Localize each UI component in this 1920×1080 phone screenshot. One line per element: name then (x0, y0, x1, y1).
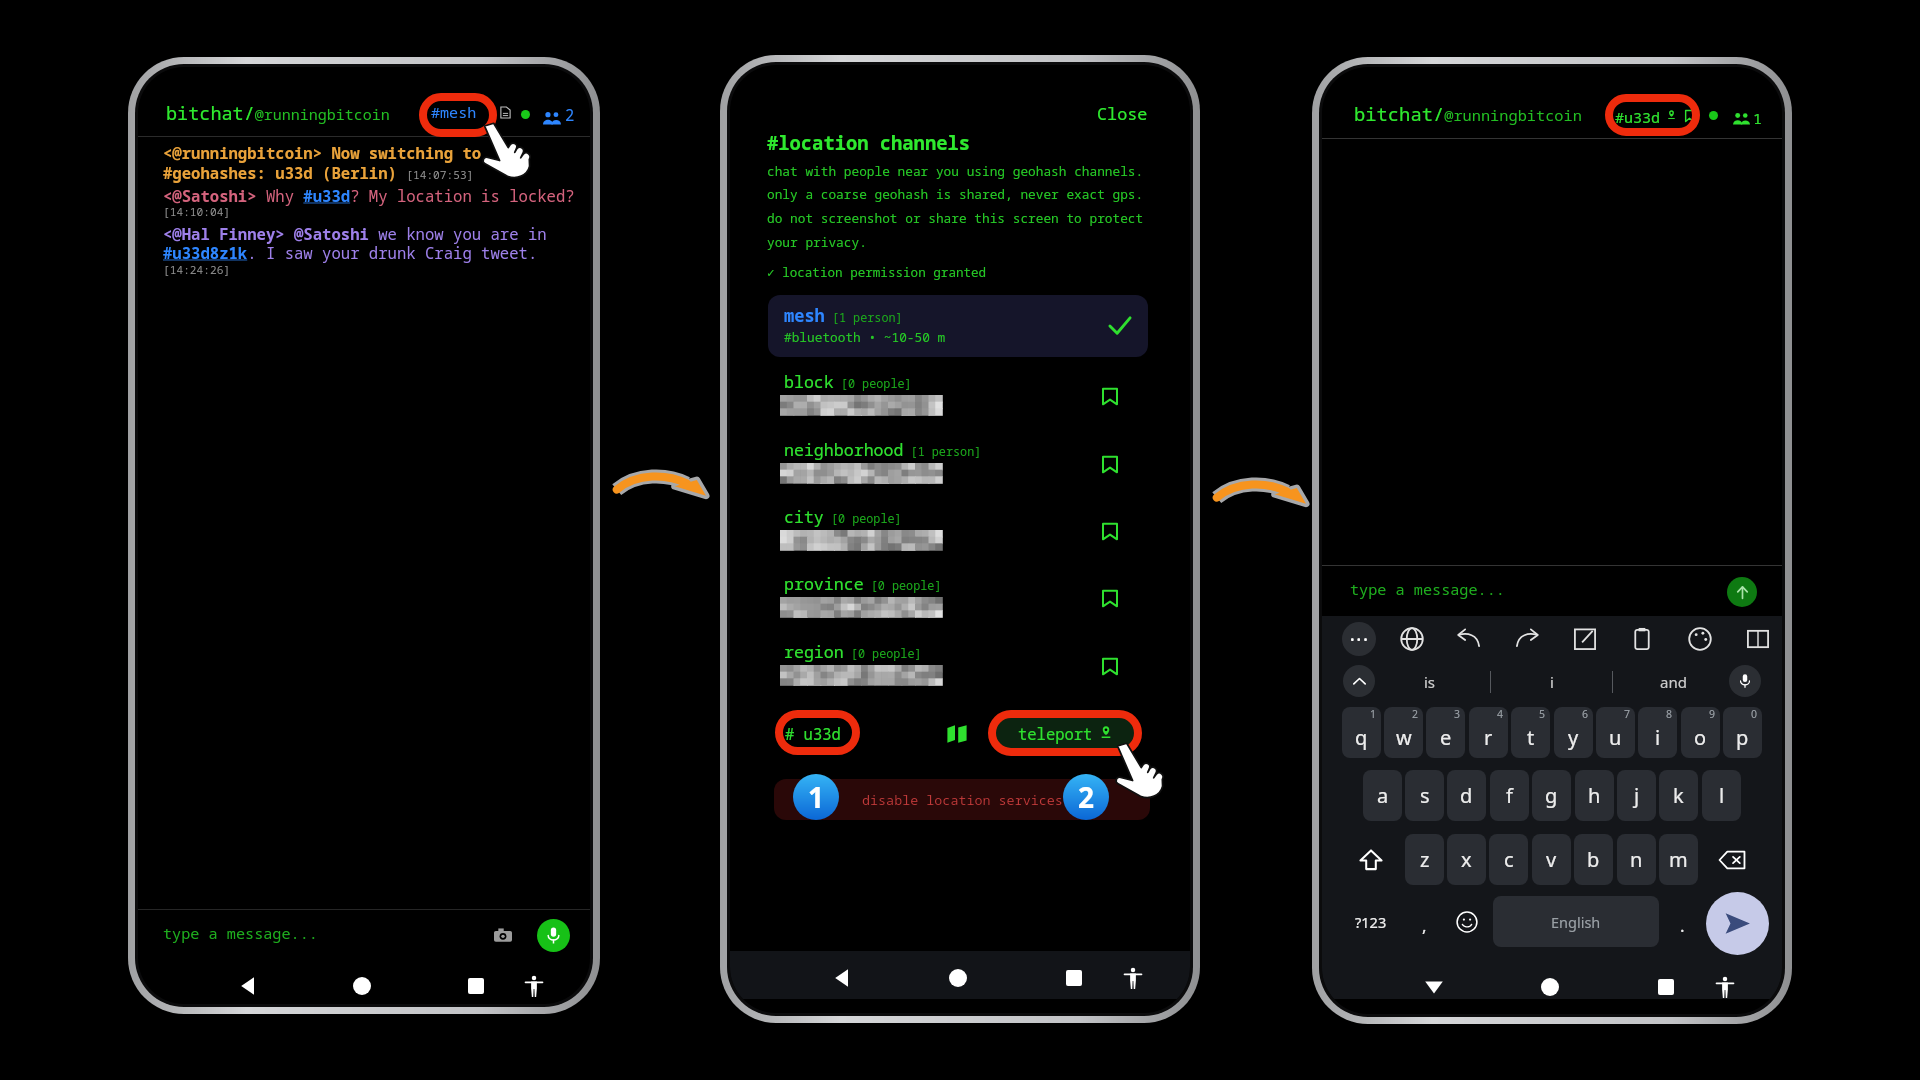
button[interactable]: . (1663, 896, 1702, 947)
button[interactable]: Bookmark block (1100, 388, 1120, 405)
button[interactable]: 6 (1554, 707, 1593, 758)
button[interactable]: Close (1093, 99, 1151, 127)
button[interactable]: Bookmark city (1100, 523, 1120, 540)
button[interactable]: l (1702, 770, 1741, 821)
button[interactable]: s (1405, 770, 1444, 821)
button[interactable]: # u33d (778, 718, 848, 748)
staticText: t (1527, 724, 1535, 751)
button[interactable]: English (1493, 896, 1659, 947)
button[interactable]: Undo (1457, 627, 1481, 651)
button[interactable]: 7 (1596, 707, 1635, 758)
staticText: mesh [1 person] (784, 304, 903, 327)
button[interactable]: n (1617, 834, 1656, 885)
button[interactable]: d (1447, 770, 1486, 821)
staticText: o (1694, 724, 1707, 751)
button[interactable]: 5 (1511, 707, 1550, 758)
button[interactable]: Map (947, 725, 967, 743)
button[interactable]: Accessibility (1124, 968, 1142, 989)
button[interactable]: Clipboard (1630, 627, 1654, 651)
button[interactable]: block [0 people] (730, 370, 1190, 418)
staticText: ✓ location permission granted (767, 264, 987, 281)
button[interactable]: Channel #mesh (427, 99, 481, 125)
staticText: disable location services (862, 791, 1063, 809)
button[interactable]: m (1659, 834, 1698, 885)
button[interactable]: Recent apps (1066, 970, 1082, 986)
button[interactable]: Voice input (1729, 665, 1761, 697)
staticText: 9 (1709, 707, 1716, 721)
button[interactable]: Bookmark (1684, 110, 1695, 122)
button[interactable]: Accessibility (1716, 977, 1734, 998)
staticText: chat with people near you using geohash … (767, 162, 1144, 251)
staticText: type a message... (163, 923, 318, 944)
button[interactable]: Back (1424, 977, 1444, 997)
staticText: i (1550, 672, 1554, 692)
button[interactable]: neighborhood [1 person] (730, 438, 1190, 486)
staticText: 0 (1751, 707, 1758, 721)
button[interactable]: Bookmark neighborhood (1100, 456, 1120, 473)
staticText: 1 (1370, 707, 1377, 721)
button[interactable]: g (1532, 770, 1571, 821)
button[interactable]: Notes (500, 107, 511, 122)
button[interactable]: 1 (1342, 707, 1381, 758)
button[interactable]: f (1490, 770, 1529, 821)
button[interactable]: disable location services (774, 779, 1150, 820)
button[interactable]: People (1733, 111, 1750, 123)
button[interactable]: People (543, 110, 561, 122)
button[interactable]: Back (832, 968, 852, 988)
button[interactable]: Send (1727, 577, 1757, 607)
button[interactable]: Home (948, 968, 968, 988)
button[interactable]: z (1405, 834, 1444, 885)
button[interactable]: b (1574, 834, 1613, 885)
button[interactable]: 9 (1681, 707, 1720, 758)
button[interactable]: Voice message (537, 919, 570, 952)
staticText: [14:10:04] (163, 204, 231, 219)
button[interactable]: Redo (1515, 627, 1539, 651)
staticText: i (1655, 724, 1661, 751)
staticText: region [0 people] (784, 640, 922, 663)
staticText: ?123 (1355, 912, 1387, 932)
button[interactable]: c (1489, 834, 1528, 885)
button[interactable]: Theme (1688, 627, 1712, 651)
button[interactable]: , (1405, 896, 1444, 947)
button[interactable]: Back (238, 976, 258, 996)
button[interactable]: k (1659, 770, 1698, 821)
button[interactable]: Send message (1706, 892, 1769, 955)
button[interactable]: Home (1540, 977, 1560, 997)
button[interactable]: 0 (1723, 707, 1762, 758)
button[interactable]: 8 (1638, 707, 1677, 758)
button[interactable]: Language (1400, 627, 1424, 651)
button[interactable]: More options (1342, 622, 1376, 656)
button[interactable]: Recent apps (1658, 979, 1674, 995)
button[interactable]: 4 (1469, 707, 1508, 758)
staticText: 7 (1624, 707, 1631, 721)
button[interactable]: Edit text (1573, 627, 1597, 651)
button[interactable]: j (1617, 770, 1656, 821)
button[interactable]: Backspace (1702, 834, 1762, 885)
button[interactable]: city [0 people] (730, 505, 1190, 553)
button[interactable]: Recent apps (468, 978, 484, 994)
button[interactable]: Accessibility (525, 976, 543, 997)
button[interactable]: teleport (993, 715, 1137, 751)
button[interactable]: x (1447, 834, 1486, 885)
staticText: 8 (1666, 707, 1673, 721)
button[interactable]: province [0 people] (730, 572, 1190, 620)
button[interactable]: h (1575, 770, 1614, 821)
button[interactable]: 2 (1384, 707, 1423, 758)
button[interactable]: Channel #u33d (1611, 104, 1665, 130)
button[interactable]: Bookmark region (1100, 658, 1120, 675)
button[interactable]: ?123 (1341, 896, 1401, 947)
button[interactable]: Emoji (1447, 896, 1486, 947)
button[interactable]: Layout (1746, 627, 1770, 651)
button[interactable]: v (1532, 834, 1571, 885)
button[interactable]: Shift (1341, 834, 1401, 885)
staticText: r (1484, 724, 1493, 751)
button[interactable]: Expand toolbar (1343, 665, 1375, 697)
staticText: s (1420, 782, 1430, 809)
button[interactable]: 3 (1426, 707, 1465, 758)
button[interactable]: a (1363, 770, 1402, 821)
button[interactable]: region [0 people] (730, 640, 1190, 688)
button[interactable]: Bookmark province (1100, 590, 1120, 607)
button[interactable]: Camera (494, 927, 512, 942)
button[interactable]: mesh [1 person] (768, 295, 1148, 357)
button[interactable]: Home (352, 976, 372, 996)
